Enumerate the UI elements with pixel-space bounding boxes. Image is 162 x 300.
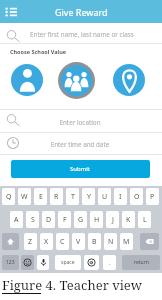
- button[interactable]: B: [88, 233, 101, 250]
- button[interactable]: I: [114, 188, 127, 205]
- button[interactable]: D: [42, 211, 55, 228]
- staticText: S: [31, 215, 35, 225]
- staticText: Y: [87, 192, 91, 202]
- staticText: return: [134, 259, 149, 266]
- button[interactable]: P: [146, 188, 159, 205]
- button[interactable]: K: [122, 211, 135, 228]
- staticText: space: [61, 259, 75, 266]
- staticText: K: [126, 215, 131, 225]
- staticText: Submit: [70, 165, 91, 173]
- button[interactable]: Dictate: [37, 255, 49, 270]
- button[interactable]: Shift: [2, 233, 19, 250]
- staticText: Q: [6, 192, 12, 202]
- staticText: T: [71, 192, 75, 202]
- staticText: Give Reward: [55, 6, 108, 18]
- button[interactable]: Group: [61, 65, 92, 96]
- staticText: .: [109, 259, 111, 267]
- button[interactable]: J: [106, 211, 119, 228]
- staticText: J: [112, 215, 114, 225]
- staticText: Enter time and date: [30, 140, 130, 149]
- staticText: I: [119, 192, 122, 202]
- staticText: Choose School Value: [10, 48, 67, 55]
- staticText: O: [134, 192, 140, 202]
- staticText: Z: [28, 237, 33, 247]
- staticText: W: [21, 192, 28, 202]
- button[interactable]: A: [10, 211, 23, 228]
- button[interactable]: R: [50, 188, 63, 205]
- staticText: A: [14, 215, 19, 225]
- button[interactable]: Menu: [5, 6, 17, 18]
- button[interactable]: S: [26, 211, 39, 228]
- button[interactable]: .: [103, 255, 116, 270]
- button[interactable]: Y: [82, 188, 95, 205]
- staticText: G: [78, 215, 84, 225]
- button[interactable]: Z: [24, 233, 37, 250]
- button[interactable]: O: [130, 188, 143, 205]
- button[interactable]: 123: [2, 255, 19, 270]
- staticText: Enter location: [30, 118, 130, 127]
- staticText: C: [60, 237, 65, 247]
- button[interactable]: Enter time and date: [0, 133, 162, 154]
- button[interactable]: Submit: [11, 160, 150, 178]
- button[interactable]: M: [120, 233, 133, 250]
- button[interactable]: C: [56, 233, 69, 250]
- button[interactable]: Emoji: [21, 255, 34, 270]
- button[interactable]: N: [104, 233, 117, 250]
- button[interactable]: Enter location: [0, 110, 162, 132]
- staticText: Enter first name, last name or class: [30, 30, 134, 39]
- staticText: 123: [6, 259, 15, 266]
- button[interactable]: X: [40, 233, 53, 250]
- button[interactable]: V: [72, 233, 85, 250]
- button[interactable]: W: [18, 188, 31, 205]
- staticText: M: [123, 237, 130, 247]
- staticText: B: [92, 237, 97, 247]
- staticText: N: [108, 237, 114, 247]
- button[interactable]: Person: [11, 64, 43, 96]
- staticText: E: [39, 192, 43, 202]
- button[interactable]: H: [90, 211, 103, 228]
- button[interactable]: L: [138, 211, 151, 228]
- staticText: R: [54, 192, 59, 202]
- button[interactable]: return: [122, 255, 160, 270]
- staticText: H: [94, 215, 100, 225]
- button[interactable]: F: [58, 211, 71, 228]
- button[interactable]: G: [74, 211, 87, 228]
- button[interactable]: Location: [113, 64, 145, 96]
- staticText: Figure 4. Teacher view: [2, 276, 142, 294]
- button[interactable]: At sign: [84, 255, 99, 270]
- button[interactable]: Enter first name, last name or class: [0, 23, 162, 43]
- staticText: X: [44, 237, 49, 247]
- button[interactable]: space: [55, 255, 81, 270]
- button[interactable]: U: [98, 188, 111, 205]
- staticText: L: [143, 215, 147, 225]
- button[interactable]: E: [34, 188, 47, 205]
- staticText: P: [150, 192, 155, 202]
- button[interactable]: Q: [2, 188, 15, 205]
- staticText: F: [63, 215, 67, 225]
- staticText: U: [102, 192, 108, 202]
- staticText: D: [46, 215, 52, 225]
- staticText: V: [76, 237, 81, 247]
- button[interactable]: T: [66, 188, 79, 205]
- button[interactable]: Backspace: [140, 233, 159, 250]
